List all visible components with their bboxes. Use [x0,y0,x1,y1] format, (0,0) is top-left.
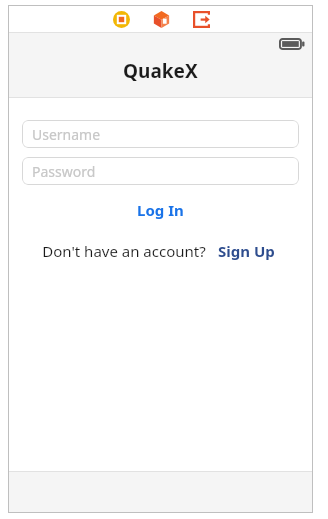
staticText: QuakeX [123,58,198,84]
staticText: Log In [137,200,184,220]
staticText: Don't have an account? [42,241,206,261]
button[interactable]: Username [22,120,299,148]
button[interactable]: Package [150,8,172,30]
staticText: Username [32,125,101,144]
button[interactable]: Log In [127,196,194,224]
button[interactable]: Record [110,8,132,30]
button[interactable]: Export [190,8,212,30]
staticText: Password [32,162,96,181]
button[interactable]: Password [22,157,299,185]
staticText: Sign Up [218,241,275,261]
button[interactable]: Sign Up [214,238,279,264]
